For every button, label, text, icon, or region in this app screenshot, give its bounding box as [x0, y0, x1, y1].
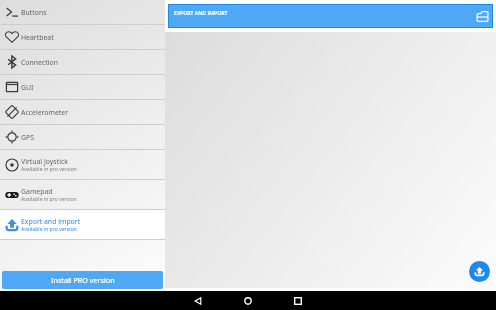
staticText: Gamepad	[21, 187, 53, 196]
button[interactable]: GUI	[0, 75, 165, 99]
button[interactable]: Install PRO version	[2, 271, 163, 289]
staticText: Virtual Joystick	[21, 157, 68, 166]
button[interactable]: Home	[239, 292, 257, 310]
staticText: Available in pro version	[21, 196, 77, 203]
staticText: Export and import	[21, 217, 81, 226]
staticText: Heartbeat	[21, 33, 54, 42]
staticText: EXPORT AND IMPORT	[174, 9, 228, 16]
button[interactable]: GPS	[0, 125, 165, 149]
staticText: GPS	[21, 133, 34, 142]
button[interactable]: Accelerometer	[0, 100, 165, 124]
button[interactable]: Buttons	[0, 0, 165, 24]
button[interactable]: Recents	[289, 292, 307, 310]
button[interactable]: Export and import	[0, 210, 165, 239]
staticText: GUI	[21, 83, 34, 92]
staticText: Buttons	[21, 8, 47, 17]
button[interactable]: Gamepad	[0, 180, 165, 209]
button[interactable]: Heartbeat	[0, 25, 165, 49]
button[interactable]: Back	[189, 292, 207, 310]
staticText: Accelerometer	[21, 108, 68, 117]
button[interactable]: Virtual Joystick	[0, 150, 165, 179]
button[interactable]: Connection	[0, 50, 165, 74]
button[interactable]: Export	[469, 261, 490, 282]
staticText: Available in pro version	[21, 226, 77, 233]
staticText: Connection	[21, 58, 58, 67]
staticText: Install PRO version	[51, 275, 115, 285]
staticText: Available in pro version	[21, 166, 77, 173]
button[interactable]: Open folder	[474, 8, 490, 24]
